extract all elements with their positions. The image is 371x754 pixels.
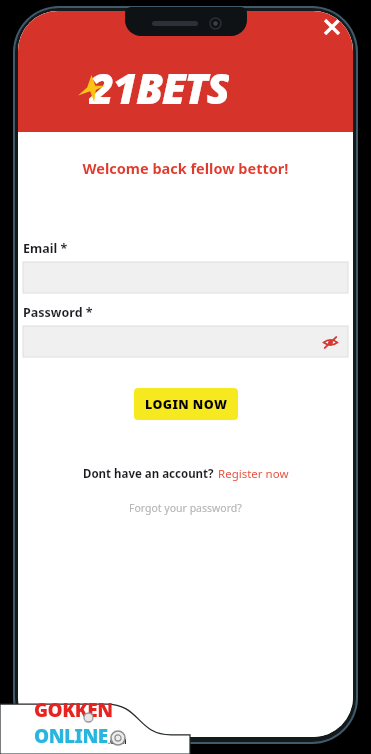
staticText: 21BETS [89, 58, 229, 112]
staticText: LOGIN NOW [145, 396, 228, 413]
staticText: GOKKEN [34, 697, 113, 723]
button[interactable]: Close [316, 11, 348, 43]
button[interactable]: Register now [218, 466, 289, 482]
button[interactable]: GOKKEN [34, 697, 127, 749]
staticText: Password * [23, 304, 93, 321]
button[interactable]: Show password [23, 326, 348, 357]
staticText: .COM [108, 737, 127, 747]
staticText: Dont have an account? [83, 466, 214, 482]
staticText: ONLINE [34, 723, 108, 749]
button[interactable]: LOGIN NOW [134, 388, 238, 420]
staticText: Email * [23, 240, 68, 257]
staticText: Register now [218, 466, 289, 482]
staticText: Forgot your password? [129, 501, 242, 515]
staticText: Welcome back fellow bettor! [18, 158, 353, 178]
button[interactable]: Show password [320, 332, 340, 352]
button[interactable]: Forgot your password? [129, 501, 242, 515]
